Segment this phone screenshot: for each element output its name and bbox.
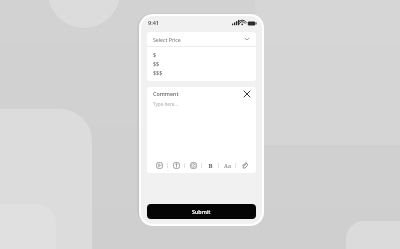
staticText: $: [153, 51, 157, 58]
button[interactable]: Insert image: [151, 158, 167, 173]
staticText: Select Price: [153, 36, 181, 43]
staticText: Aa: [224, 162, 231, 169]
other: Expand price options: [244, 36, 250, 42]
staticText: $$$: [153, 69, 163, 76]
button[interactable]: Select Price: [147, 32, 256, 46]
button[interactable]: Close comment: [242, 89, 251, 98]
staticText: $$: [153, 60, 160, 67]
staticText: Submit: [192, 208, 211, 215]
button[interactable]: Insert camera: [185, 158, 201, 173]
button[interactable]: Bold: [202, 158, 218, 173]
button[interactable]: Attach file: [236, 158, 252, 173]
button[interactable]: Type here...: [147, 100, 256, 158]
button[interactable]: Insert gallery: [168, 158, 184, 173]
staticText: 9:41: [148, 19, 159, 26]
button[interactable]: $: [153, 50, 256, 59]
staticText: Type here...: [153, 101, 178, 107]
button[interactable]: $$$: [153, 68, 256, 77]
button[interactable]: Text style: [219, 158, 235, 173]
button[interactable]: $$: [153, 59, 256, 68]
button[interactable]: Submit: [147, 204, 256, 219]
staticText: Comment: [153, 90, 179, 97]
staticText: B: [208, 162, 213, 170]
